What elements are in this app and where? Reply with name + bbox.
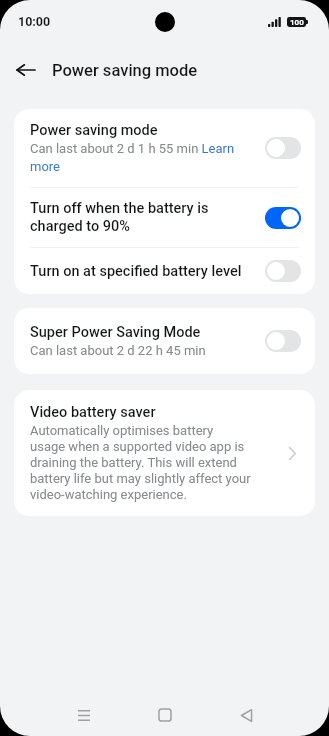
staticText: 10:00	[18, 14, 51, 29]
staticText: Turn off when the battery is charged to …	[30, 200, 255, 235]
staticText: Can last about 2 d 1 h 55 min Learn more	[30, 141, 255, 174]
button[interactable]: On	[265, 207, 301, 229]
staticText: Video battery saver	[30, 404, 156, 421]
button[interactable]: Super Power Saving Mode	[14, 308, 315, 374]
button[interactable]: Turn on at specified battery level	[14, 248, 315, 294]
staticText: Super Power Saving Mode	[30, 324, 201, 341]
button[interactable]: Back	[223, 694, 269, 736]
button[interactable]: Off	[265, 137, 301, 159]
staticText: Power saving mode	[52, 61, 198, 80]
staticText: 100	[290, 18, 304, 27]
button[interactable]: Off	[265, 330, 301, 352]
staticText: Power saving mode	[30, 122, 158, 139]
button[interactable]: Recent apps	[61, 694, 107, 736]
button[interactable]: Video battery saver	[14, 390, 315, 516]
button[interactable]: Home	[142, 694, 188, 736]
staticText: Turn on at specified battery level	[30, 263, 255, 280]
staticText: Can last about 2 d 22 h 45 min	[30, 343, 206, 358]
button[interactable]: Off	[265, 260, 301, 282]
button[interactable]: Back	[8, 52, 44, 88]
button[interactable]: Turn off when the battery is charged to …	[14, 188, 315, 247]
staticText: Automatically optimises battery usage wh…	[30, 423, 251, 502]
button[interactable]: Power saving mode	[14, 109, 315, 187]
